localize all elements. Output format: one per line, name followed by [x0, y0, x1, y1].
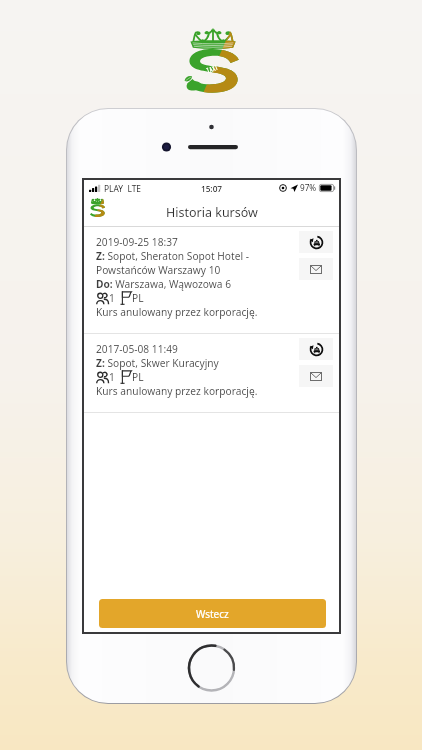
staticText: PL	[132, 370, 144, 384]
button[interactable]: Wstecz	[99, 599, 326, 628]
staticText: 97%	[300, 182, 317, 193]
staticText: PLAY LTE	[104, 183, 142, 194]
staticText: 2019-09-25 18:37	[96, 235, 178, 249]
staticText: Powstańców Warszawy 10	[96, 263, 221, 277]
staticText: Historia kursów	[166, 204, 258, 221]
staticText: Do: Warszawa, Wąwozowa 6	[96, 277, 232, 291]
button[interactable]: Powtórz kurs	[299, 338, 333, 360]
staticText: 1	[109, 370, 115, 384]
staticText: Z: Sopot, Sheraton Sopot Hotel -	[96, 249, 249, 263]
staticText: PL	[132, 291, 144, 305]
staticText: 1	[109, 291, 115, 305]
button[interactable]: Powtórz kurs	[299, 231, 333, 253]
staticText: Z: Sopot, Skwer Kuracyjny	[96, 356, 219, 370]
staticText: 15:07	[84, 183, 339, 194]
staticText: 2017-05-08 11:49	[96, 342, 178, 356]
staticText: Wstecz	[196, 607, 229, 621]
button[interactable]: Wyślij wiadomość	[299, 258, 333, 280]
staticText: Kurs anulowany przez korporację.	[96, 384, 258, 398]
button[interactable]: Wyślij wiadomość	[299, 365, 333, 387]
staticText: Kurs anulowany przez korporację.	[96, 305, 258, 319]
